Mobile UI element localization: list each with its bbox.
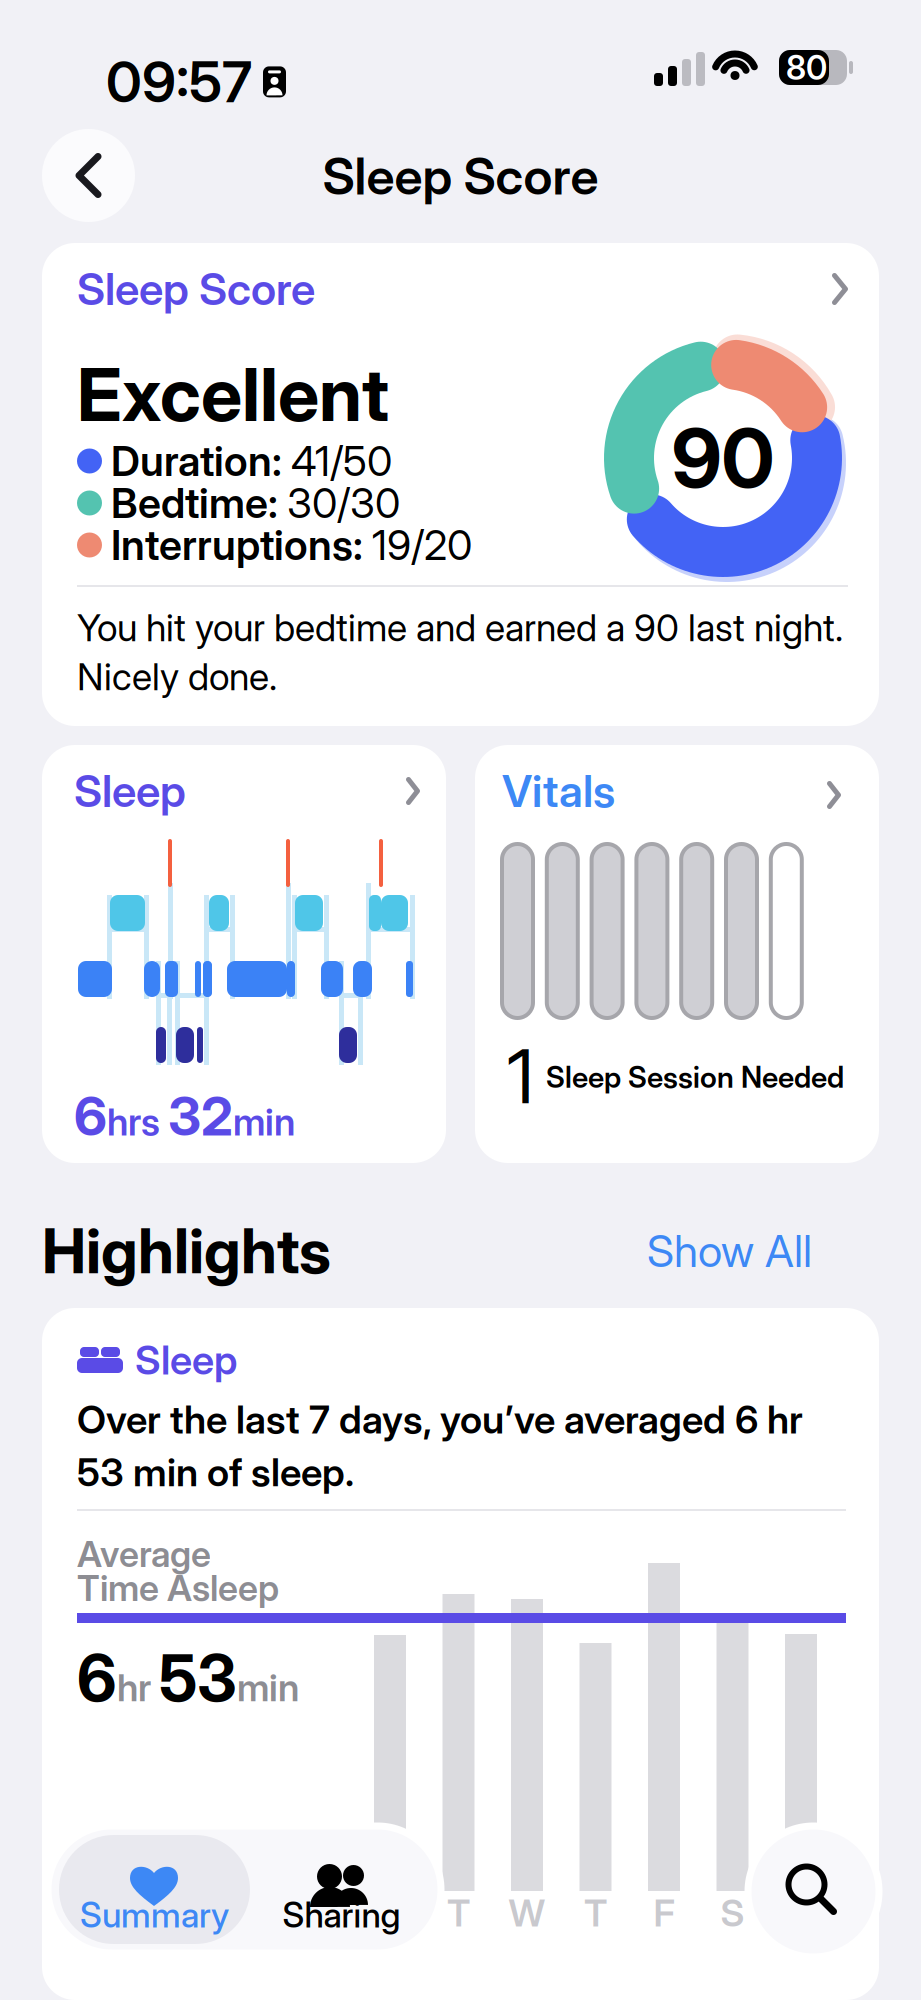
staticText: 80 (786, 47, 827, 88)
staticText: Time Asleep (77, 1566, 279, 1610)
staticText: 90 (671, 409, 774, 507)
staticText: Sharing (282, 1894, 400, 1936)
button[interactable]: Vitals (475, 745, 879, 1163)
staticText: 09:57 (106, 48, 252, 116)
button[interactable]: Back (42, 129, 135, 222)
staticText: Vitals (502, 764, 615, 818)
staticText: F (653, 1890, 674, 1936)
staticText: You hit your bedtime and earned a 90 las… (77, 605, 843, 699)
staticText: M (373, 1890, 406, 1936)
staticText: hr (117, 1665, 159, 1710)
staticText: Summary (80, 1894, 229, 1936)
staticText: 32 (168, 1084, 233, 1148)
staticText: Bedtime: (102, 478, 287, 528)
staticText: Sleep (135, 1336, 237, 1384)
staticText: Sleep (74, 764, 186, 818)
button[interactable]: Sleep Score (42, 243, 879, 726)
staticText: Interruptions: (102, 520, 372, 570)
button[interactable]: Show All (647, 1222, 812, 1280)
staticText: Sleep Session Needed (546, 1059, 844, 1095)
button[interactable]: Summary (59, 1835, 250, 1944)
staticText: Over the last 7 days, you’ve averaged 6 … (77, 1396, 803, 1496)
staticText: 30/30 (287, 478, 400, 528)
staticText: 1 (507, 1031, 534, 1121)
staticText: Highlights (42, 1214, 331, 1288)
staticText: 6 (77, 1639, 117, 1717)
staticText: hrs (107, 1099, 168, 1144)
staticText: T (447, 1890, 470, 1936)
staticText: W (508, 1890, 545, 1936)
staticText: 41/50 (291, 436, 392, 486)
staticText: T (584, 1890, 607, 1936)
staticText: S (720, 1890, 744, 1936)
button[interactable]: Sharing (254, 1835, 429, 1944)
button[interactable]: Search (748, 1826, 879, 1957)
staticText: 53 (159, 1639, 237, 1717)
staticText: Average (77, 1532, 211, 1576)
staticText: Show All (647, 1224, 812, 1278)
button[interactable]: Sleep (42, 745, 446, 1163)
staticText: Duration: (102, 436, 291, 486)
staticText: Sleep Score (322, 145, 598, 207)
staticText: S (789, 1890, 813, 1936)
staticText: 6 (74, 1084, 107, 1148)
staticText: min (233, 1099, 295, 1144)
staticText: Sleep Score (77, 262, 315, 316)
staticText: Excellent (77, 350, 389, 439)
staticText: min (237, 1665, 299, 1710)
staticText: 19/20 (372, 520, 472, 570)
